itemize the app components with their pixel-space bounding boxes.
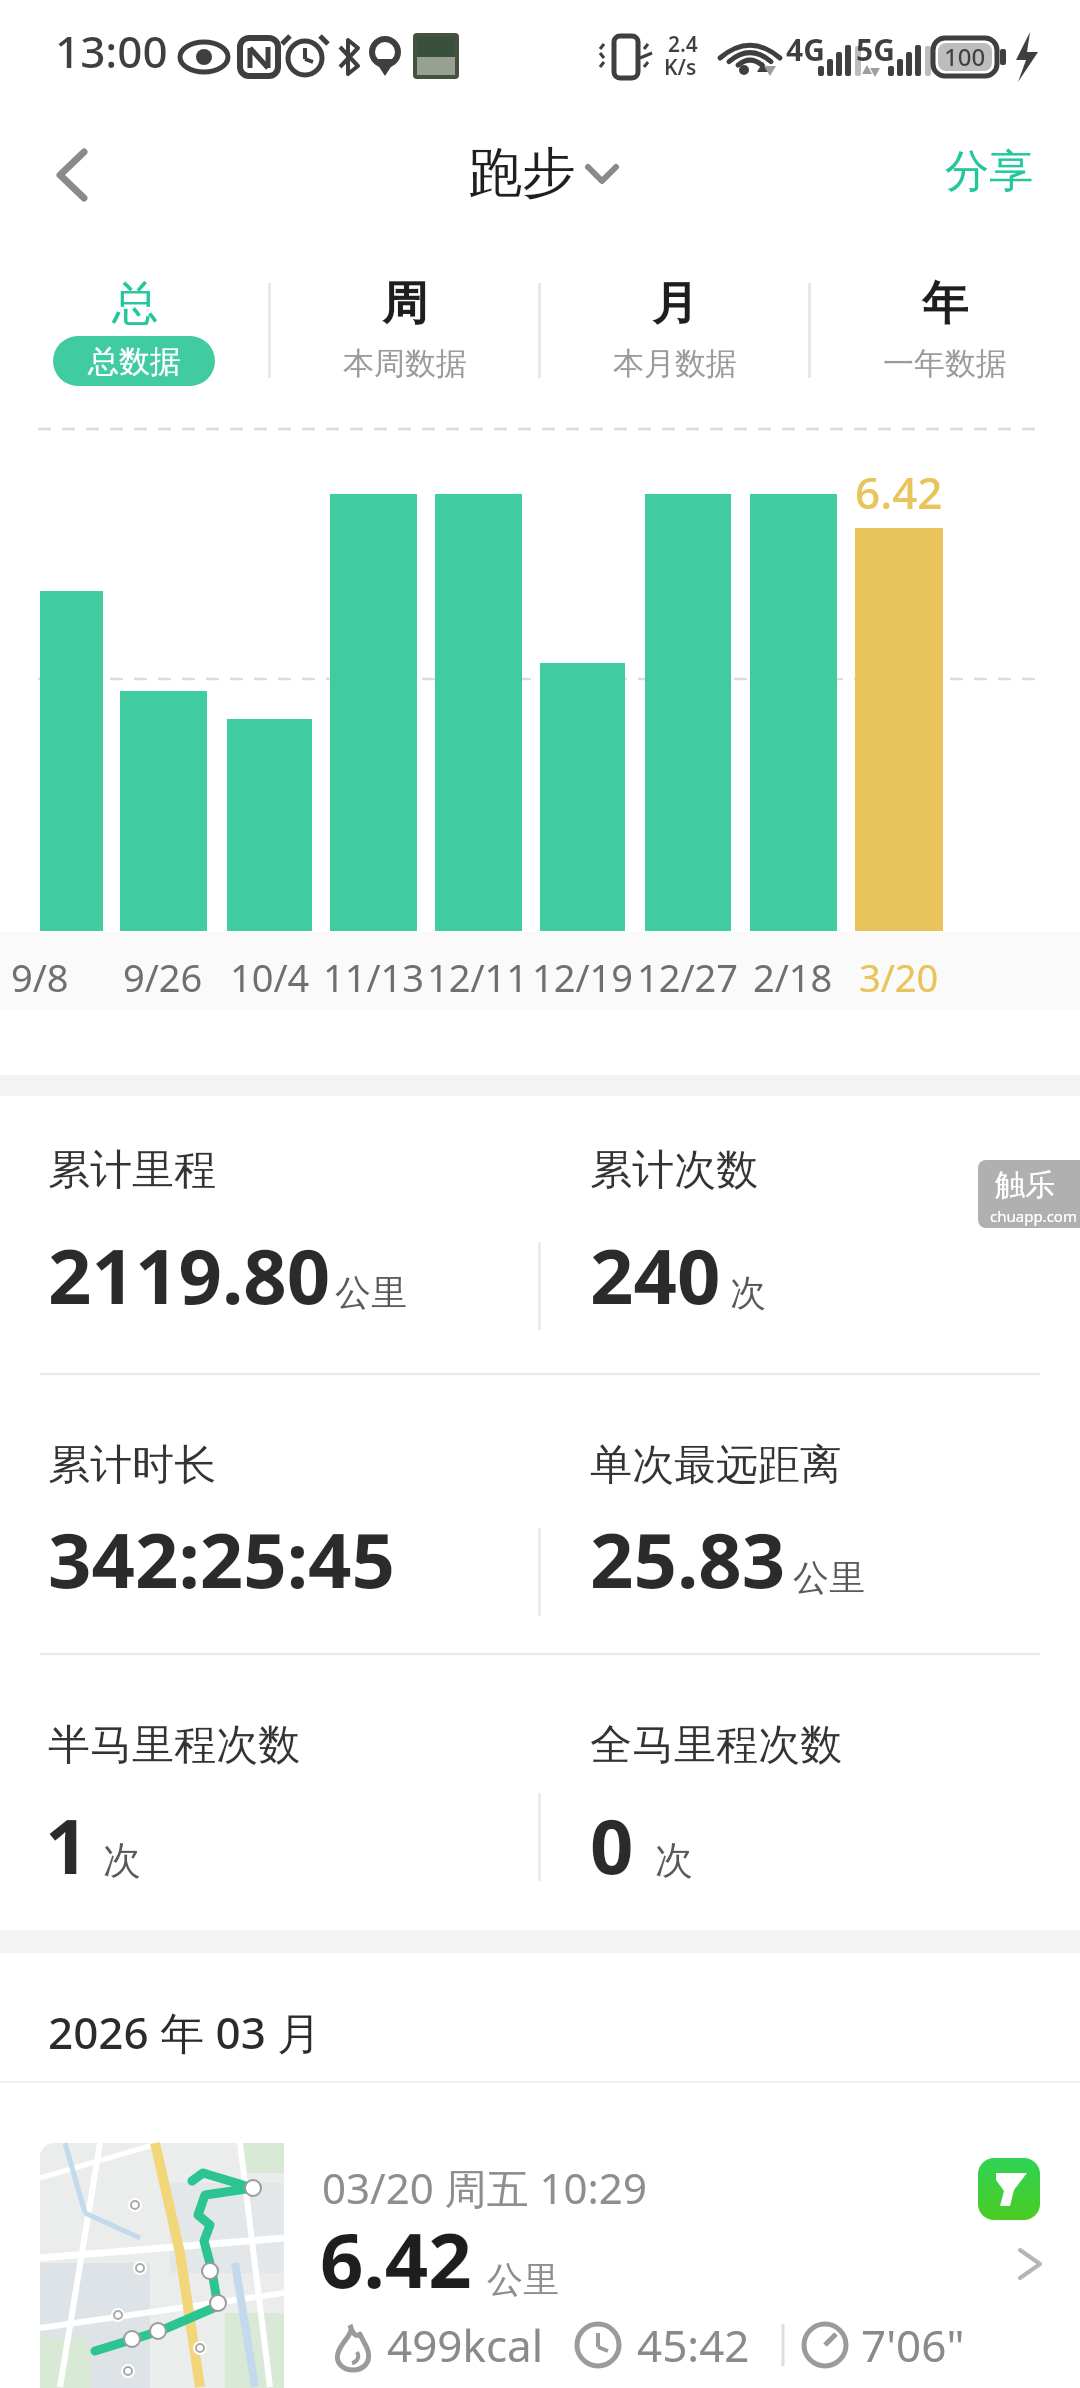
staticText: 12/19 (532, 951, 634, 1003)
staticText: 100 (944, 40, 986, 73)
staticText: 2.4 (668, 30, 698, 59)
staticText: 次 (655, 1836, 693, 1884)
staticText: 13:00 (55, 21, 168, 81)
staticText: 本月数据 (613, 344, 737, 383)
staticText: 7'06" (861, 2315, 965, 2375)
staticText: 342:25:45 (48, 1507, 396, 1611)
staticText: 9/26 (123, 951, 203, 1003)
staticText: 公里 (335, 1270, 407, 1315)
staticText: 累计次数 (590, 1144, 758, 1197)
staticText: 半马里程次数 (48, 1719, 300, 1772)
staticText: 月 (652, 275, 698, 333)
staticText: 2026 年 03 月 (48, 2002, 322, 2062)
staticText: 次 (730, 1270, 766, 1315)
staticText: 9/8 (11, 951, 69, 1003)
staticText: 公里 (487, 2257, 559, 2302)
staticText: 03/20 周五 10:29 (322, 2159, 647, 2216)
button[interactable] (40, 2143, 284, 2388)
staticText: 总 (112, 275, 158, 333)
staticText: 5G (856, 29, 895, 70)
staticText: 12/11 (427, 951, 529, 1003)
staticText: 2/18 (753, 951, 833, 1003)
staticText: 0 (590, 1793, 634, 1897)
button[interactable] (840, 265, 1050, 395)
button[interactable]: 分享 (945, 144, 1033, 199)
staticText: 周 (382, 275, 428, 333)
button[interactable] (30, 265, 240, 395)
button[interactable]: 跑步 (468, 139, 576, 207)
staticText: 12/27 (637, 951, 739, 1003)
staticText: 公里 (793, 1555, 865, 1600)
staticText: 4G (786, 29, 825, 70)
staticText: 本周数据 (343, 344, 467, 383)
button[interactable] (300, 2140, 1080, 2388)
staticText: 全马里程次数 (590, 1719, 842, 1772)
staticText: 499kcal (387, 2315, 544, 2375)
staticText: 3/20 (859, 951, 939, 1003)
staticText: 累计里程 (48, 1144, 216, 1197)
button[interactable] (300, 265, 510, 395)
staticText: chuapp.com (990, 1206, 1077, 1226)
staticText: 1 (45, 1793, 89, 1897)
staticText: 25.83 (590, 1507, 786, 1611)
staticText: 11/13 (323, 951, 425, 1003)
staticText: 6.42 (855, 462, 943, 522)
staticText: 10/4 (230, 951, 310, 1003)
staticText: 2119.80 (48, 1223, 331, 1327)
staticText: 240 (590, 1223, 721, 1327)
staticText: 总数据 (88, 342, 181, 381)
staticText: 单次最远距离 (590, 1439, 842, 1492)
staticText: 一年数据 (883, 344, 1007, 383)
staticText: 年 (922, 275, 968, 333)
staticText: K/s (664, 53, 697, 82)
staticText: 次 (103, 1836, 141, 1884)
staticText: 45:42 (637, 2315, 750, 2375)
button[interactable] (570, 265, 780, 395)
staticText: 累计时长 (48, 1439, 216, 1492)
button[interactable] (40, 130, 100, 220)
staticText: 触乐 (995, 1166, 1055, 1204)
staticText: 6.42 (320, 2207, 472, 2311)
